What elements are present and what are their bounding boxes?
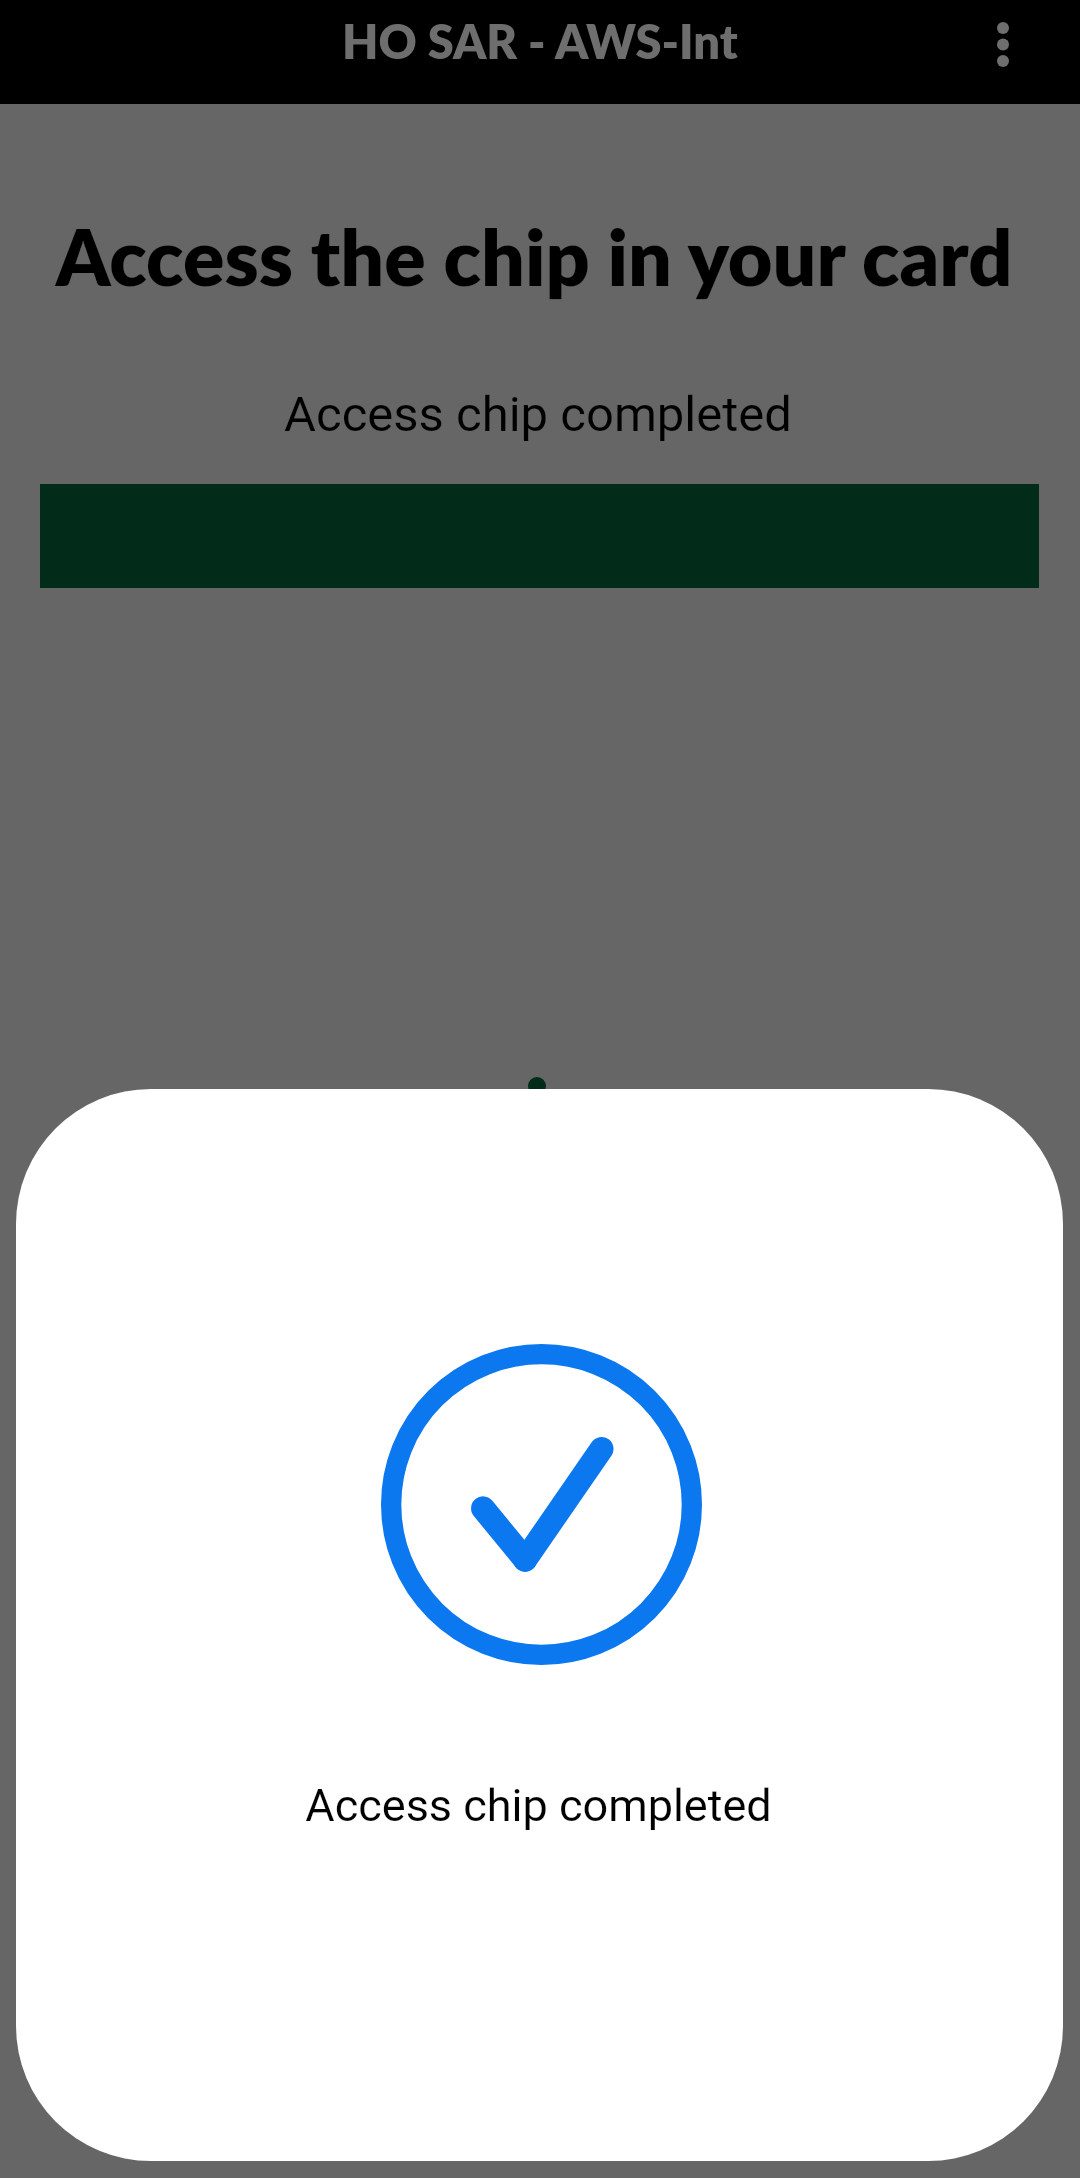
staticText: Access chip completed xyxy=(0,386,1078,443)
staticText: HO SAR - AWS-Int xyxy=(342,13,738,69)
staticText: Access the chip in your card xyxy=(0,210,1074,302)
staticText: Access chip completed xyxy=(16,1779,1062,1832)
button[interactable]: More options xyxy=(951,0,1055,104)
